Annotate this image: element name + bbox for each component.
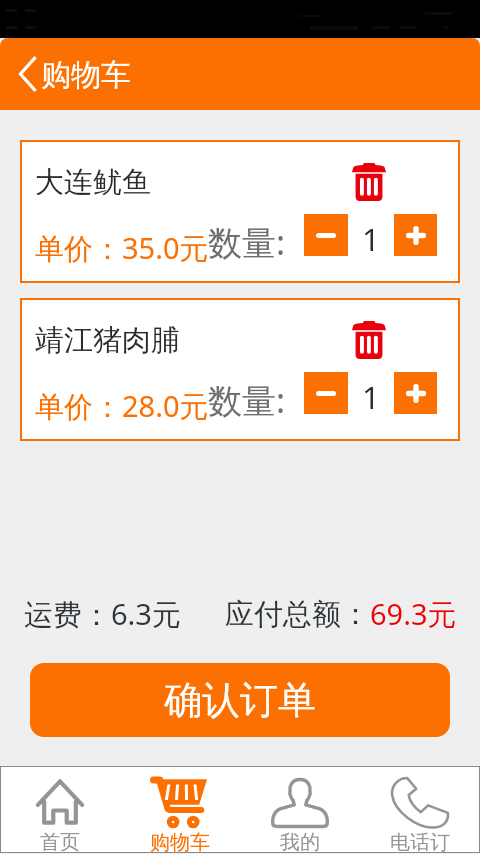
staticText: 大连鱿鱼 <box>35 164 151 201</box>
button[interactable]: Increase quantity <box>394 372 437 414</box>
button[interactable]: Increase quantity <box>394 214 437 256</box>
button[interactable]: 确认订单 <box>30 663 450 737</box>
button[interactable]: Decrease quantity <box>304 372 348 414</box>
staticText: 电话订 <box>390 830 450 854</box>
staticText: 数量: <box>208 219 286 265</box>
staticText: 69.3元 <box>370 594 457 634</box>
staticText: 应付总额： <box>225 596 370 633</box>
staticText: 数量: <box>208 377 286 423</box>
button[interactable]: 电话订 <box>360 766 480 853</box>
button[interactable]: 我的 <box>240 766 360 853</box>
staticText: 购物车 <box>150 830 210 854</box>
staticText: 购物车 <box>41 56 131 94</box>
button[interactable]: Delete item <box>345 158 393 206</box>
staticText: 首页 <box>40 830 80 854</box>
button[interactable]: Back <box>8 51 48 97</box>
staticText: 1 <box>362 218 380 260</box>
staticText: 运费：6.3元 <box>24 594 181 634</box>
staticText: 靖江猪肉脯 <box>35 322 180 359</box>
button[interactable]: 购物车 <box>120 766 240 853</box>
staticText: 1 <box>362 376 380 418</box>
staticText: 单价：35.0元 <box>35 228 209 268</box>
staticText: 单价：28.0元 <box>35 386 209 426</box>
staticText: 我的 <box>280 830 320 854</box>
button[interactable]: 首页 <box>0 766 120 853</box>
button[interactable]: Decrease quantity <box>304 214 348 256</box>
button[interactable]: Delete item <box>345 316 393 364</box>
staticText: 确认订单 <box>164 676 316 724</box>
